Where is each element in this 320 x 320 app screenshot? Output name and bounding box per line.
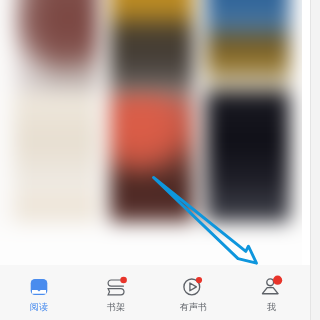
- button[interactable]: 我: [232, 265, 310, 320]
- staticText: 我: [267, 301, 276, 312]
- staticText: 阅读: [30, 301, 48, 312]
- staticText: 书架: [107, 301, 125, 312]
- button[interactable]: 书架: [77, 265, 154, 320]
- button[interactable]: 有声书: [154, 265, 232, 320]
- button[interactable]: 阅读: [0, 265, 77, 320]
- staticText: 有声书: [180, 301, 207, 312]
